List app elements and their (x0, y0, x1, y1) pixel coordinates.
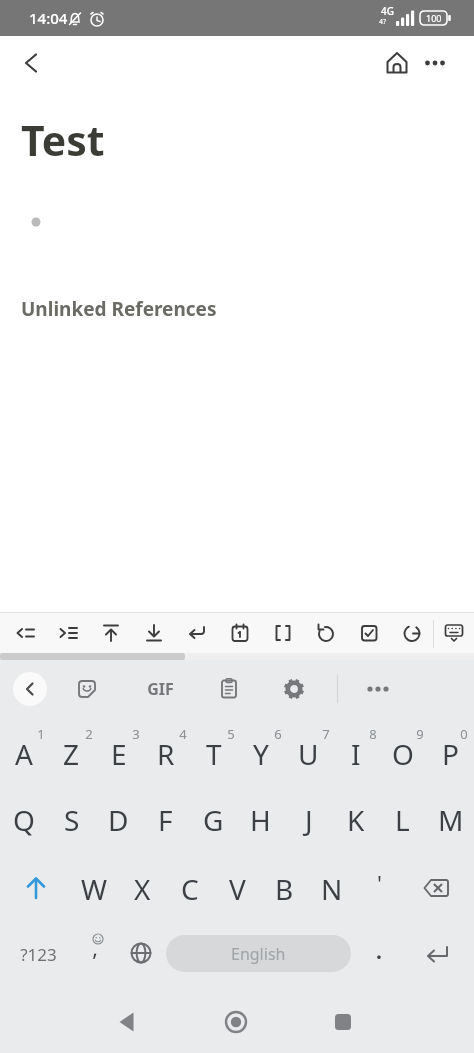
staticText: 0 (460, 725, 468, 743)
button[interactable] (271, 621, 295, 645)
button[interactable] (185, 621, 209, 645)
staticText: 4G (381, 4, 394, 18)
button[interactable]: C (166, 857, 213, 921)
button[interactable]: M (427, 788, 474, 852)
button[interactable]: D (95, 788, 142, 852)
staticText: Test (21, 112, 105, 168)
staticText: E (111, 735, 127, 773)
staticText: N (321, 870, 343, 908)
button[interactable]: Y (237, 722, 284, 786)
button[interactable]: A (0, 722, 47, 786)
button[interactable] (281, 676, 307, 702)
button[interactable] (99, 621, 123, 645)
button[interactable] (421, 873, 451, 903)
staticText: . (376, 937, 382, 966)
staticText: English (231, 943, 286, 965)
button[interactable] (357, 621, 381, 645)
button[interactable] (13, 621, 37, 645)
button[interactable]: Z (48, 722, 95, 786)
staticText: 6 (274, 725, 282, 743)
button[interactable] (314, 621, 338, 645)
button[interactable] (228, 621, 252, 645)
button[interactable]: U (285, 722, 332, 786)
staticText: 4 (179, 725, 187, 743)
button[interactable]: O (379, 722, 426, 786)
staticText: J (305, 801, 313, 839)
staticText: O (392, 735, 414, 773)
button[interactable] (74, 676, 100, 702)
staticText: 7 (322, 725, 330, 743)
button[interactable] (423, 939, 451, 967)
button[interactable]: H (237, 788, 284, 852)
button[interactable] (13, 672, 47, 706)
staticText: Unlinked References (21, 296, 217, 322)
staticText: B (275, 870, 294, 908)
button[interactable] (56, 621, 80, 645)
button[interactable]: I (332, 722, 379, 786)
staticText: W (81, 870, 108, 908)
button[interactable] (142, 621, 166, 645)
staticText: 14:04 (29, 8, 68, 28)
button[interactable]: P (427, 722, 474, 786)
staticText: Y (253, 735, 269, 773)
staticText: ?123 (20, 943, 57, 966)
button[interactable]: E (95, 722, 142, 786)
staticText: 8 (369, 725, 377, 743)
button[interactable]: N (308, 857, 355, 921)
staticText: I (351, 735, 361, 773)
button[interactable] (216, 676, 242, 702)
staticText: V (229, 870, 246, 908)
button[interactable]: T (190, 722, 237, 786)
button[interactable]: English (166, 935, 351, 972)
button[interactable]: . (364, 931, 394, 971)
staticText: A (15, 735, 33, 773)
button[interactable]: X (119, 857, 166, 921)
staticText: , (92, 934, 98, 963)
button[interactable]: ?123 (6, 934, 70, 974)
button[interactable] (21, 873, 51, 903)
staticText: 100 (426, 12, 442, 24)
button[interactable]: ' (359, 863, 399, 903)
button[interactable] (19, 51, 43, 75)
button[interactable] (422, 50, 448, 76)
button[interactable] (442, 621, 466, 645)
staticText: X (134, 870, 151, 908)
staticText: 4? (379, 17, 387, 27)
staticText: L (395, 801, 410, 839)
button[interactable]: K (332, 788, 379, 852)
button[interactable] (128, 940, 154, 966)
button[interactable] (116, 1010, 140, 1034)
staticText: ' (377, 868, 382, 898)
button[interactable]: R (142, 722, 189, 786)
staticText: H (250, 801, 271, 839)
button[interactable]: W (71, 857, 118, 921)
staticText: C (181, 870, 199, 908)
staticText: T (206, 735, 222, 773)
button[interactable]: L (379, 788, 426, 852)
staticText: 1 (37, 725, 45, 743)
button[interactable]: B (261, 857, 308, 921)
button[interactable] (363, 674, 393, 704)
button[interactable]: , (80, 928, 110, 968)
staticText: Z (63, 735, 80, 773)
button[interactable]: GIF (130, 674, 190, 704)
button[interactable] (384, 50, 410, 76)
staticText: G (203, 801, 224, 839)
button[interactable]: V (214, 857, 261, 921)
staticText: R (157, 735, 175, 773)
button[interactable]: G (190, 788, 237, 852)
button[interactable]: S (48, 788, 95, 852)
button[interactable]: F (142, 788, 189, 852)
staticText: GIF (147, 678, 174, 700)
button[interactable]: J (285, 788, 332, 852)
staticText: S (64, 801, 80, 839)
staticText: F (158, 801, 173, 839)
button[interactable] (332, 1011, 354, 1033)
button[interactable] (400, 621, 424, 645)
staticText: 9 (416, 725, 424, 743)
button[interactable]: Q (0, 788, 47, 852)
staticText: M (438, 801, 464, 839)
staticText: K (347, 801, 365, 839)
staticText: P (442, 735, 459, 773)
button[interactable] (223, 1009, 249, 1035)
